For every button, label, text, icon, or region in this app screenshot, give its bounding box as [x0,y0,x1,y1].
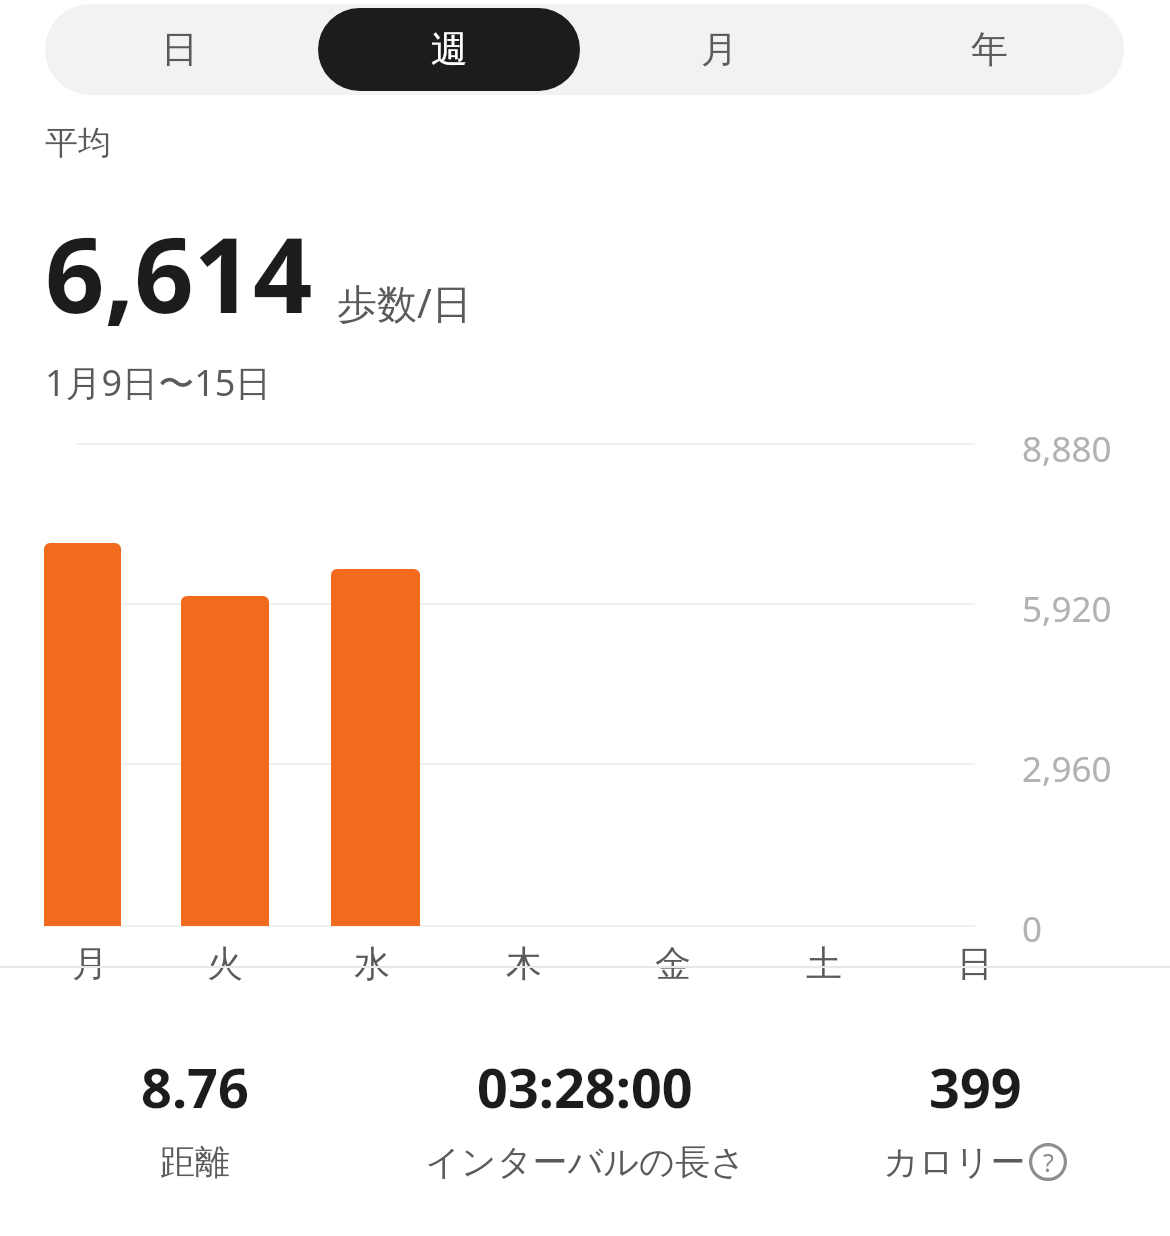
staticText: 年 [971,26,1008,73]
staticText: 水 [354,941,390,986]
staticText: 金 [655,941,691,986]
staticText: 距離 [160,1140,230,1184]
staticText: 日 [957,941,993,986]
staticText: 2,960 [1022,745,1112,793]
staticText: 木 [506,941,542,986]
staticText: 土 [806,941,842,986]
staticText: 8,880 [1022,425,1112,473]
button[interactable]: 8.76 [0,1050,390,1184]
staticText: 月 [72,941,108,986]
staticText: 399 [929,1050,1022,1124]
staticText: 火 [207,941,243,986]
staticText: 8.76 [141,1050,249,1124]
button[interactable]: 年 [858,8,1120,91]
button[interactable]: 日 [49,8,310,91]
staticText: 5,920 [1022,585,1112,633]
staticText: 6,614 [45,202,313,344]
staticText: 0 [1022,905,1043,953]
button[interactable]: 月 [588,8,850,91]
staticText: カロリー [883,1140,1026,1184]
staticText: 日 [161,26,198,73]
staticText: 歩数/日 [337,275,472,330]
staticText: 平均 [45,122,111,164]
button[interactable]: 03:28:00 [390,1050,780,1184]
staticText: 03:28:00 [477,1050,693,1124]
staticText: 週 [431,26,468,73]
button[interactable]: 399 [780,1050,1170,1184]
staticText: 1月9日〜15日 [45,358,272,407]
button[interactable]: ヘルプ [1029,1143,1067,1181]
button[interactable]: 週 [318,8,580,91]
staticText: ? [1043,1145,1054,1179]
staticText: 月 [701,26,738,73]
staticText: インターバルの長さ [425,1140,746,1184]
